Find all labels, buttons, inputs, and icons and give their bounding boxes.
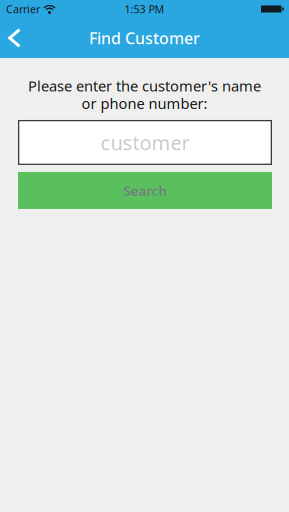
staticText: Search <box>123 182 166 199</box>
button[interactable]: Customer name or phone number <box>17 120 271 165</box>
staticText: Please enter the customer's name <box>28 76 261 95</box>
button[interactable]: Search <box>17 172 271 209</box>
staticText: or phone number: <box>81 93 207 113</box>
staticText: customer <box>100 129 189 156</box>
staticText: Find Customer <box>89 27 200 49</box>
staticText: Carrier <box>6 2 40 16</box>
button[interactable]: Back <box>0 20 42 58</box>
staticText: 1:53 PM <box>124 2 164 16</box>
